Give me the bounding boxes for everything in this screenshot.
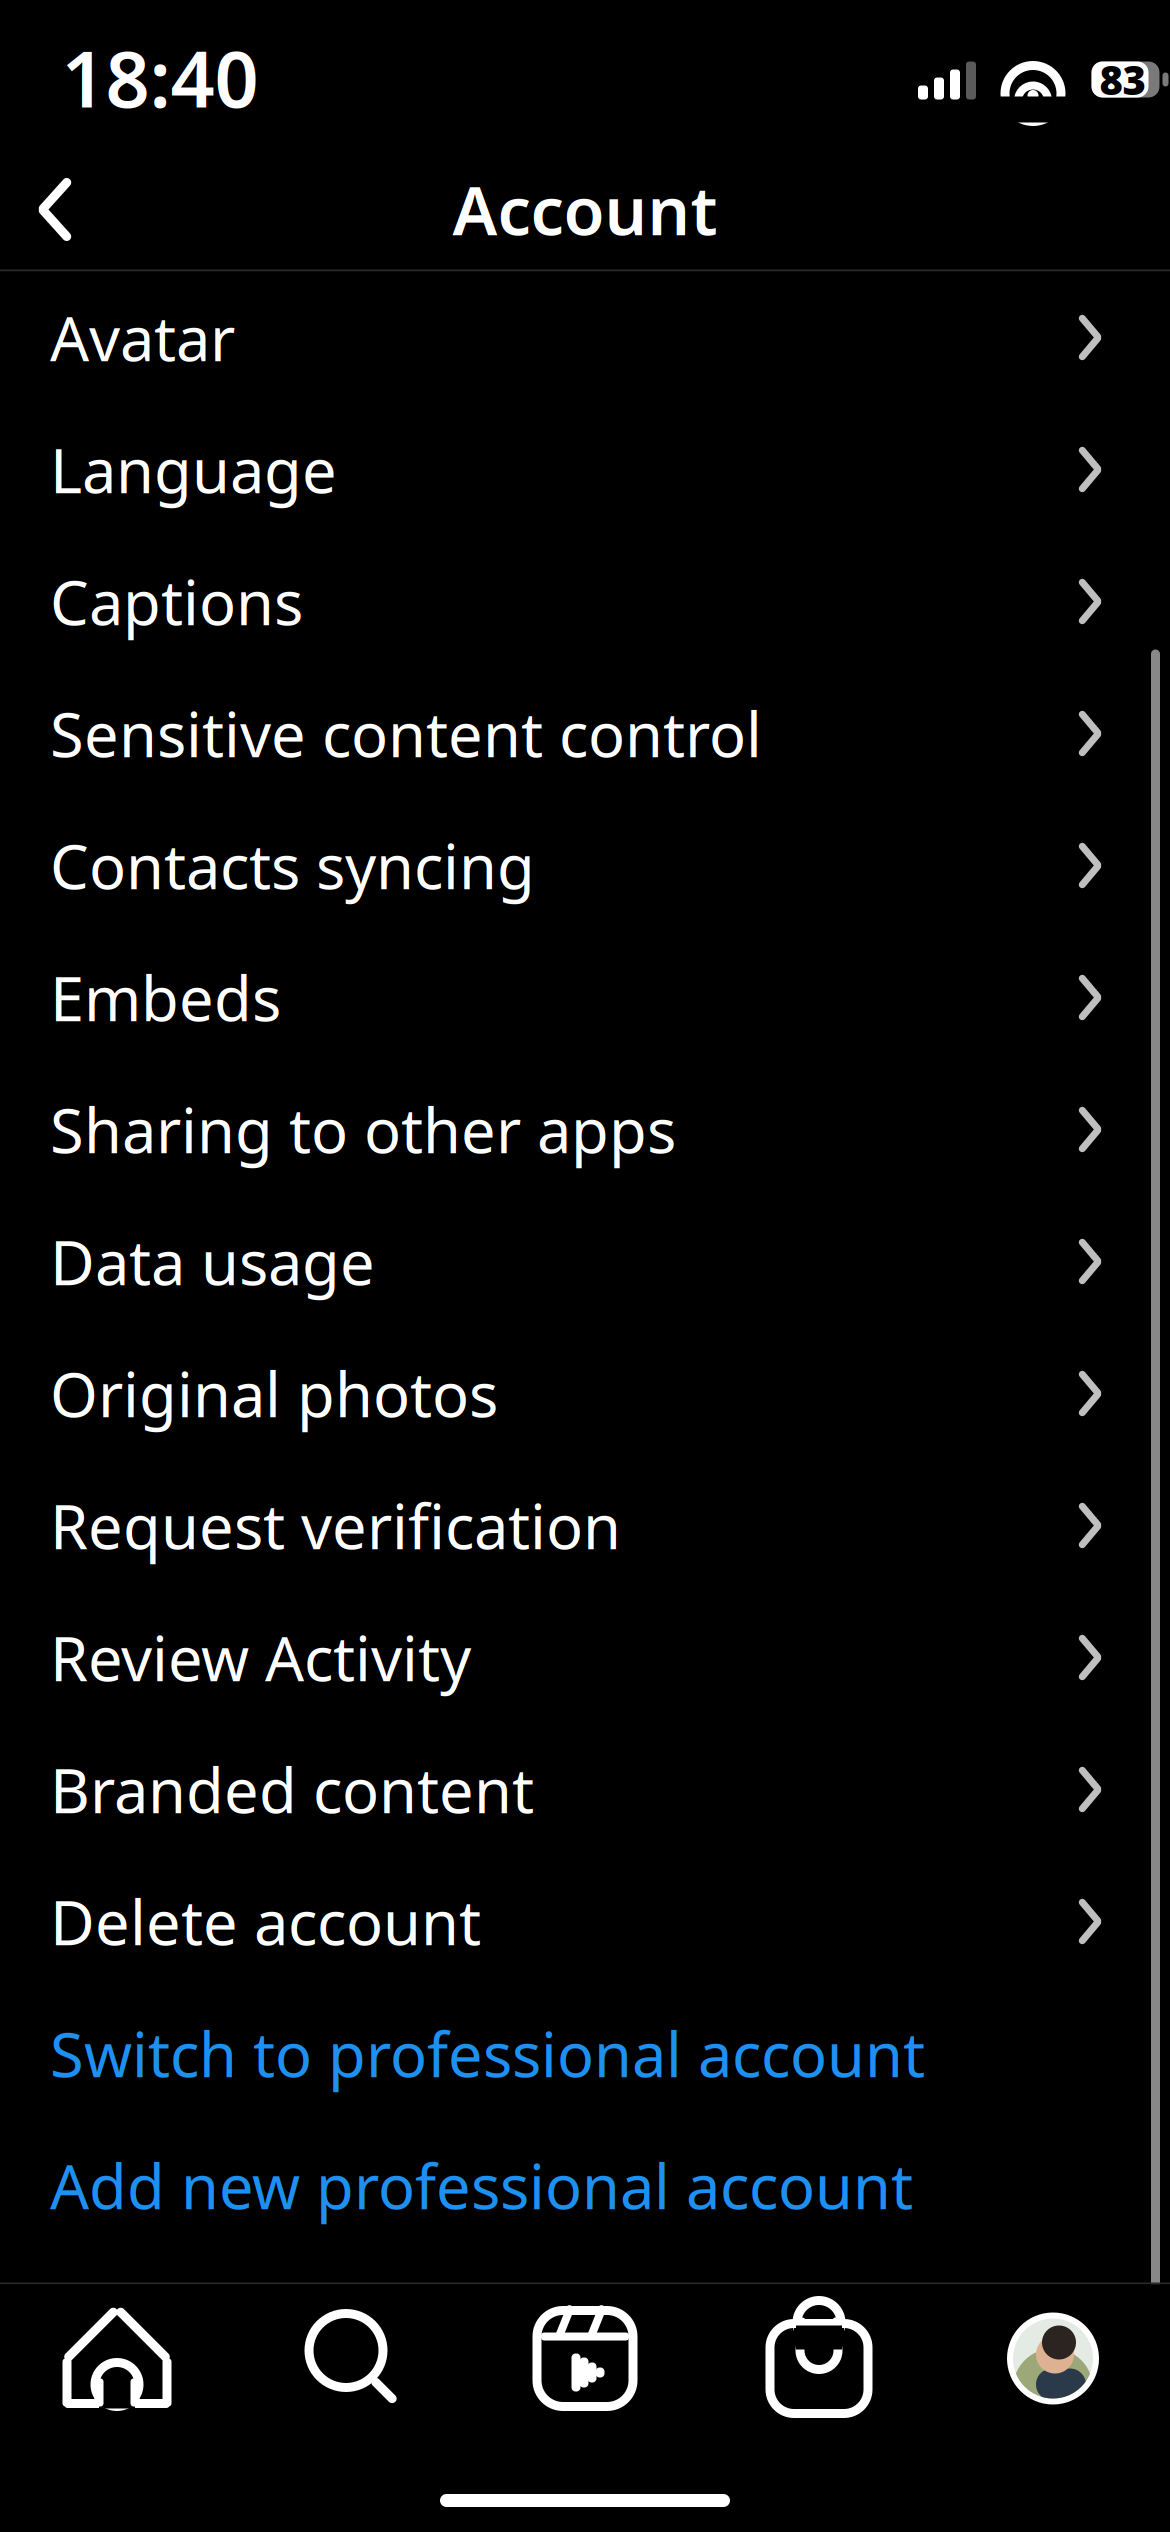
button[interactable]: Data usage [0,1195,1170,1327]
button[interactable]: Avatar [0,271,1170,403]
button[interactable]: Search [234,2284,468,2432]
staticText: Original photos [50,1353,498,1434]
staticText: Sharing to other apps [50,1089,676,1170]
staticText: Data usage [50,1221,375,1302]
button[interactable]: Delete account [0,1855,1170,1987]
staticText: 83 [1099,53,1145,106]
staticText: 18:40 [61,26,258,129]
staticText: Sensitive content control [50,693,762,774]
staticText: Contacts syncing [50,825,535,906]
staticText: Review Activity [50,1617,471,1698]
button[interactable]: Captions [0,535,1170,667]
staticText: Captions [50,561,303,642]
staticText: Branded content [50,1749,534,1830]
staticText: Embeds [50,957,281,1038]
button[interactable]: Review Activity [0,1591,1170,1723]
button[interactable]: Shop [702,2284,936,2432]
button[interactable]: Switch to professional account [0,1987,1170,2119]
staticText: Avatar [50,297,235,378]
button[interactable]: Home [0,2284,234,2432]
staticText: Add new professional account [50,2145,913,2226]
staticText: Language [50,429,337,510]
staticText: Switch to professional account [50,2013,925,2094]
button[interactable]: Sensitive content control [0,667,1170,799]
button[interactable]: Sharing to other apps [0,1063,1170,1195]
button[interactable]: Add new professional account [0,2119,1170,2251]
staticText: Delete account [50,1881,481,1962]
button[interactable]: Language [0,403,1170,535]
button[interactable]: Embeds [0,931,1170,1063]
staticText: Account [452,165,717,254]
button[interactable]: Profile [936,2284,1170,2432]
button[interactable]: Back [0,149,110,269]
staticText: Request verification [50,1485,621,1566]
button[interactable]: Branded content [0,1723,1170,1855]
button[interactable]: Reels [468,2284,702,2432]
button[interactable]: Contacts syncing [0,799,1170,931]
button[interactable]: Original photos [0,1327,1170,1459]
button[interactable]: Request verification [0,1459,1170,1591]
